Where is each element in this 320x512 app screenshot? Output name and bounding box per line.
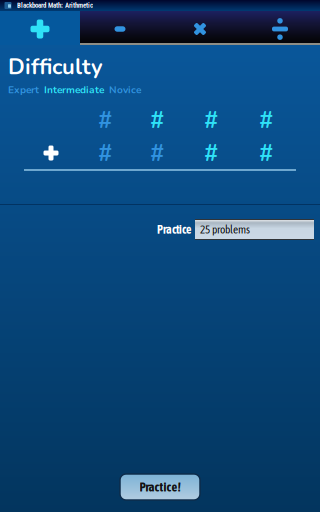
staticText: Difficulty [8,52,103,82]
staticText: # [204,137,218,169]
staticText: # [204,104,218,136]
button[interactable]: Addition [0,11,80,45]
button[interactable]: Division [240,11,320,45]
staticText: # [259,137,273,169]
staticText: # [98,137,112,169]
staticText: Intermediate [44,83,104,97]
button[interactable]: Practice! [120,474,200,500]
button[interactable]: Problem count [195,219,314,240]
button[interactable]: Multiplication [160,11,240,45]
button[interactable]: Subtraction [80,11,160,45]
staticText: Blackboard Math: Arithmetic [17,1,93,9]
staticText: Practice [157,223,191,236]
staticText: Novice [109,83,141,97]
button[interactable]: Expert [8,83,39,97]
button[interactable]: Intermediate [44,83,104,97]
staticText: Practice! [139,480,180,494]
staticText: # [150,104,164,136]
staticText: # [150,137,164,169]
staticText: # [259,104,273,136]
button[interactable]: Novice [109,83,141,97]
staticText: Expert [8,83,39,97]
staticText: # [98,104,112,136]
staticText: 25 problems [200,223,250,236]
